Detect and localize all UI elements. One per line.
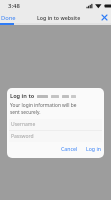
button[interactable]: Close — [98, 12, 110, 23]
staticText: 3:48 — [8, 2, 20, 10]
staticText: Log in — [86, 145, 101, 152]
staticText: Password — [11, 133, 34, 140]
staticText: Cancel — [61, 145, 78, 152]
staticText: Log in to — [10, 92, 35, 100]
button[interactable]: Cancel — [59, 143, 80, 154]
staticText: Log in to website — [37, 14, 81, 21]
button[interactable]: Password — [9, 131, 102, 142]
button[interactable]: Done — [0, 13, 19, 23]
staticText: Done — [1, 14, 16, 22]
staticText: Username — [11, 121, 36, 128]
staticText: Your login information will be sent secu… — [10, 102, 86, 116]
button[interactable]: Log in — [84, 143, 103, 154]
button[interactable]: Username — [9, 119, 102, 130]
